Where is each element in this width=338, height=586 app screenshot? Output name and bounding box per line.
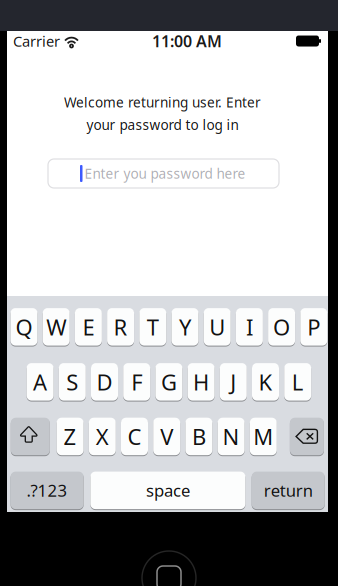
staticText: M [253, 421, 273, 451]
staticText: B [192, 421, 206, 451]
staticText: E [82, 312, 94, 342]
staticText: Carrier [13, 31, 60, 51]
button[interactable]: B [185, 417, 212, 456]
button[interactable]: X [89, 417, 116, 456]
button[interactable]: .?123 [11, 471, 84, 510]
staticText: T [147, 312, 159, 342]
button[interactable]: Shift [11, 417, 50, 456]
button[interactable]: L [284, 363, 311, 401]
button[interactable]: W [43, 308, 70, 346]
button[interactable]: U [204, 308, 231, 346]
staticText: W [46, 312, 66, 342]
staticText: Y [179, 312, 191, 342]
button[interactable]: P [300, 308, 327, 346]
staticText: 11:00 AM [152, 30, 222, 52]
button[interactable]: V [153, 417, 180, 456]
button[interactable]: Q [10, 308, 37, 346]
staticText: V [160, 421, 173, 451]
button[interactable]: F [123, 363, 150, 401]
staticText: X [96, 421, 109, 451]
staticText: C [127, 421, 141, 451]
button[interactable]: E [75, 308, 102, 346]
staticText: Q [15, 312, 32, 342]
button[interactable]: Z [57, 417, 84, 456]
staticText: A [33, 367, 47, 397]
staticText: L [292, 367, 304, 397]
staticText: K [258, 367, 272, 397]
button[interactable]: A [27, 363, 54, 401]
staticText: Enter you password here [84, 164, 245, 183]
staticText: P [307, 312, 320, 342]
staticText: S [66, 367, 78, 397]
staticText: U [209, 312, 225, 342]
staticText: J [230, 367, 236, 397]
button[interactable]: S [59, 363, 86, 401]
button[interactable]: M [250, 417, 277, 456]
button[interactable]: T [139, 308, 166, 346]
staticText: F [131, 367, 142, 397]
button[interactable]: I [236, 308, 263, 346]
staticText: Welcome returning user. Enter [64, 93, 261, 111]
button[interactable]: J [220, 363, 247, 401]
staticText: O [273, 312, 290, 342]
button[interactable]: Enter you password here [48, 159, 279, 188]
button[interactable]: H [188, 363, 215, 401]
staticText: G [161, 367, 177, 397]
button[interactable]: Y [171, 308, 198, 346]
staticText: I [246, 312, 253, 342]
button[interactable]: K [252, 363, 279, 401]
staticText: your password to log in [86, 115, 238, 134]
button[interactable]: return [252, 471, 325, 510]
staticText: D [96, 367, 112, 397]
button[interactable]: D [91, 363, 118, 401]
button[interactable]: N [218, 417, 245, 456]
staticText: Z [64, 421, 77, 451]
staticText: R [114, 312, 128, 342]
button[interactable]: Delete [290, 417, 324, 456]
button[interactable]: C [121, 417, 148, 456]
staticText: space [146, 479, 190, 502]
staticText: return [264, 479, 313, 502]
button[interactable]: O [268, 308, 295, 346]
staticText: H [193, 367, 209, 397]
button[interactable]: space [90, 471, 245, 510]
staticText: .?123 [27, 479, 68, 502]
button[interactable]: R [107, 308, 134, 346]
staticText: N [223, 421, 240, 451]
button[interactable]: G [155, 363, 182, 401]
